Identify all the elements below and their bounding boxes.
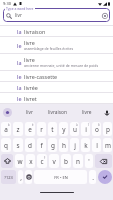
staticText: y bbox=[62, 125, 66, 134]
button[interactable]: h bbox=[59, 138, 68, 152]
staticText: assemblage de feuilles écrites bbox=[24, 46, 74, 51]
staticText: j bbox=[74, 141, 76, 150]
staticText: livre bbox=[82, 109, 92, 116]
staticText: livre bbox=[24, 39, 35, 46]
staticText: . bbox=[92, 173, 94, 182]
staticText: g bbox=[51, 141, 55, 150]
staticText: l bbox=[96, 141, 98, 150]
staticText: é bbox=[32, 123, 34, 127]
button[interactable]: j bbox=[70, 138, 79, 152]
button[interactable]: b bbox=[61, 154, 71, 168]
button[interactable]: FR • EN bbox=[34, 170, 87, 184]
button[interactable]: Shift bbox=[1, 154, 13, 168]
staticText: m bbox=[105, 141, 111, 150]
button[interactable]: la bbox=[0, 54, 113, 70]
staticText: livraison bbox=[24, 28, 46, 35]
button[interactable]: , bbox=[18, 170, 23, 184]
button[interactable]: z bbox=[13, 122, 23, 136]
button[interactable]: Search bbox=[98, 170, 112, 184]
staticText: ?123 bbox=[4, 175, 13, 180]
staticText: ancienne monnaie, unité de mesure de poi… bbox=[24, 63, 99, 68]
staticText: la bbox=[17, 84, 22, 91]
staticText: la bbox=[17, 28, 22, 35]
button[interactable]: ' bbox=[85, 154, 93, 168]
button[interactable]: f bbox=[37, 138, 46, 152]
staticText: c bbox=[40, 157, 44, 166]
staticText: livr bbox=[15, 12, 22, 19]
button[interactable]: la bbox=[0, 82, 113, 92]
staticText: Type a word here bbox=[6, 6, 34, 11]
staticText: p bbox=[106, 125, 110, 134]
button[interactable]: Backspace bbox=[95, 154, 112, 168]
button[interactable]: le bbox=[0, 71, 113, 81]
button[interactable]: la bbox=[0, 26, 113, 36]
staticText: livre bbox=[24, 56, 35, 63]
staticText: q bbox=[4, 141, 8, 150]
button[interactable]: p bbox=[103, 122, 112, 136]
button[interactable]: . bbox=[89, 170, 96, 184]
button[interactable]: i bbox=[81, 122, 90, 136]
staticText: i bbox=[85, 125, 87, 134]
staticText: d bbox=[28, 141, 32, 150]
button[interactable]: m bbox=[103, 138, 112, 152]
button[interactable]: v bbox=[49, 154, 59, 168]
button[interactable]: k bbox=[81, 138, 90, 152]
staticText: le bbox=[17, 42, 22, 49]
button[interactable]: c bbox=[37, 154, 47, 168]
button[interactable]: y bbox=[59, 122, 68, 136]
button[interactable]: t bbox=[48, 122, 57, 136]
button[interactable]: d bbox=[25, 138, 35, 152]
staticText: ô bbox=[98, 123, 100, 127]
staticText: u bbox=[73, 125, 77, 134]
button[interactable]: q bbox=[1, 138, 11, 152]
staticText: FR • EN bbox=[54, 175, 68, 180]
staticText: livraison bbox=[48, 109, 67, 116]
button[interactable]: livr bbox=[3, 8, 110, 22]
staticText: à bbox=[8, 123, 10, 127]
button[interactable]: s bbox=[13, 138, 23, 152]
button[interactable]: a bbox=[1, 122, 11, 136]
staticText: livr bbox=[26, 109, 33, 116]
staticText: , bbox=[20, 173, 22, 182]
button[interactable]: x bbox=[26, 154, 35, 168]
button[interactable]: livre bbox=[72, 104, 101, 121]
button[interactable]: le bbox=[0, 37, 113, 53]
staticText: la bbox=[17, 59, 22, 66]
staticText: x bbox=[29, 157, 33, 166]
button[interactable]: n bbox=[73, 154, 83, 168]
staticText: z bbox=[16, 125, 20, 134]
staticText: h bbox=[62, 141, 66, 150]
button[interactable]: o bbox=[92, 122, 101, 136]
staticText: f bbox=[40, 141, 43, 150]
button[interactable]: ?123 bbox=[1, 170, 16, 184]
staticText: b bbox=[64, 157, 68, 166]
button[interactable]: Voice input bbox=[101, 104, 113, 121]
staticText: livret bbox=[24, 95, 37, 102]
button[interactable]: livr bbox=[15, 104, 43, 121]
staticText: s bbox=[16, 141, 20, 150]
staticText: livrée bbox=[24, 84, 38, 91]
staticText: le bbox=[17, 73, 22, 80]
button[interactable]: le bbox=[0, 93, 113, 103]
staticText: k bbox=[84, 141, 88, 150]
staticText: w bbox=[17, 157, 23, 166]
button[interactable]: e bbox=[25, 122, 35, 136]
staticText: ç bbox=[44, 155, 46, 159]
button[interactable]: Google Assistant bbox=[3, 108, 12, 117]
button[interactable]: Emoji bbox=[25, 170, 32, 184]
staticText: r bbox=[40, 125, 43, 134]
button[interactable]: r bbox=[37, 122, 46, 136]
staticText: î bbox=[88, 123, 89, 127]
staticText: ù bbox=[76, 123, 78, 127]
button[interactable]: livraison bbox=[43, 104, 72, 121]
staticText: ' bbox=[88, 157, 90, 166]
staticText: e bbox=[28, 125, 32, 134]
button[interactable]: Clear text bbox=[101, 12, 108, 19]
staticText: livre-cassette bbox=[24, 73, 58, 80]
button[interactable]: u bbox=[70, 122, 79, 136]
button[interactable]: w bbox=[15, 154, 24, 168]
button[interactable]: l bbox=[92, 138, 101, 152]
staticText: a bbox=[4, 125, 8, 134]
button[interactable]: g bbox=[48, 138, 57, 152]
staticText: t bbox=[51, 125, 54, 134]
